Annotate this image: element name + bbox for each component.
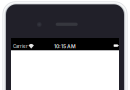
staticText: Carrier — [13, 44, 28, 49]
staticText: 10:15 AM — [54, 43, 76, 49]
